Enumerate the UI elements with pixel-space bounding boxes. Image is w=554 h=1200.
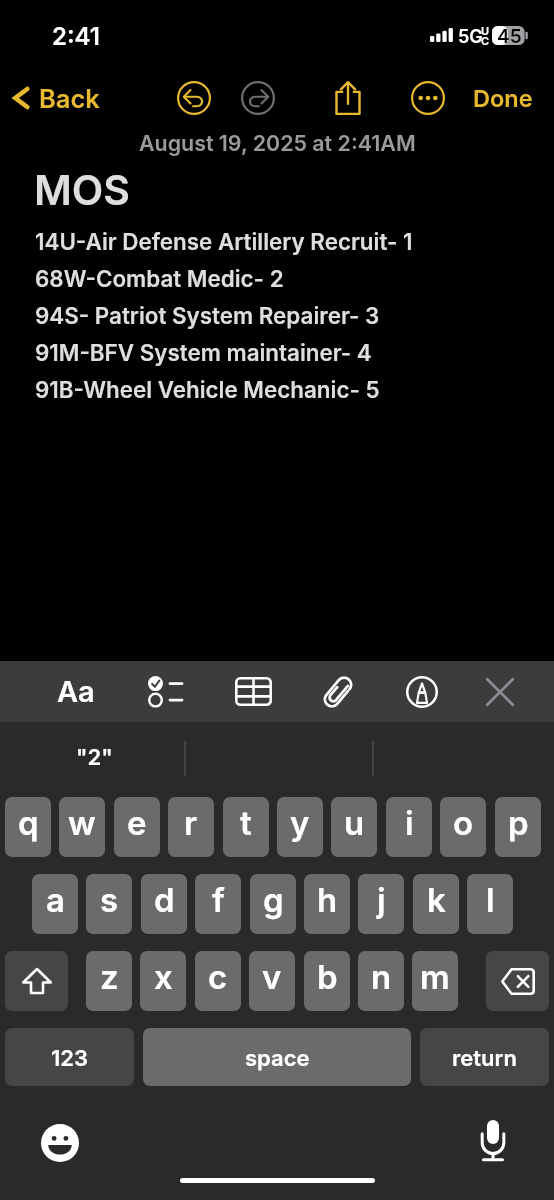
staticText: 45 [497,25,522,44]
button[interactable]: 123 [5,1028,134,1086]
staticText: i [405,803,414,843]
button[interactable]: More options [402,72,454,124]
button[interactable]: v [249,951,295,1011]
staticText: w [68,803,96,843]
staticText: space [245,1045,310,1072]
staticText: h [317,880,338,920]
button[interactable]: w [59,797,105,857]
button[interactable]: Back [6,72,110,124]
button[interactable]: o [440,797,486,857]
staticText: Done [473,84,533,112]
button[interactable]: Done [461,72,545,124]
button[interactable]: Attach file [308,661,368,722]
staticText: 68W-Combat Medic- 2 [35,265,284,292]
staticText: August 19, 2025 at 2:41AM [139,130,416,156]
button[interactable]: b [304,951,350,1011]
button[interactable]: t [223,797,269,857]
staticText: t [240,803,252,843]
button[interactable]: Close keyboard [470,661,530,722]
button[interactable]: y [277,797,323,857]
button[interactable]: i [386,797,432,857]
staticText: f [212,880,225,920]
staticText: r [184,803,198,843]
button[interactable]: g [250,874,296,934]
staticText: c [208,957,228,997]
staticText: j [377,880,386,920]
button[interactable]: Table [223,661,283,722]
staticText: d [154,880,175,920]
button[interactable]: d [141,874,187,934]
staticText: Back [39,83,100,114]
staticText: 2:41 [52,22,100,51]
staticText: x [154,957,173,997]
staticText: MOS [34,165,130,215]
button[interactable]: Markup [392,661,452,722]
button[interactable]: space [143,1028,411,1086]
button[interactable]: Redo [232,72,284,124]
staticText: 14U-Air Defense Artillery Recruit- 1 [35,228,413,255]
button[interactable]: Dictation [471,1119,515,1163]
button[interactable]: r [168,797,214,857]
button[interactable]: l [467,874,513,934]
staticText: U [481,24,490,37]
button[interactable]: m [412,951,458,1011]
staticText: q [18,803,39,843]
staticText: C [481,34,490,47]
staticText: 5G [458,26,483,48]
staticText: g [263,880,284,920]
staticText: 91B-Wheel Vehicle Mechanic- 5 [35,376,380,403]
button[interactable]: a [32,874,78,934]
button[interactable]: x [140,951,186,1011]
staticText: p [508,803,529,843]
staticText: l [486,880,495,920]
staticText: u [344,803,365,843]
staticText: s [100,880,119,920]
staticText: o [453,803,474,843]
button[interactable]: z [86,951,132,1011]
button[interactable]: j [358,874,404,934]
button[interactable]: s [86,874,132,934]
staticText: y [290,803,310,843]
button[interactable]: Aa [46,661,106,722]
staticText: a [46,880,65,920]
button[interactable]: u [331,797,377,857]
button[interactable]: k [413,874,459,934]
staticText: m [420,957,450,997]
staticText: k [427,880,446,920]
staticText: return [452,1045,517,1072]
staticText: 94S- Patriot System Repairer- 3 [35,302,380,329]
staticText: 91M-BFV System maintainer- 4 [35,339,372,366]
button[interactable]: h [304,874,350,934]
button[interactable]: Undo [168,72,220,124]
staticText: 123 [51,1045,89,1072]
staticText: z [100,957,119,997]
staticText: "2" [76,744,113,771]
button[interactable]: q [5,797,51,857]
button[interactable]: Checklist [134,661,194,722]
button[interactable]: Emoji [38,1121,82,1165]
button[interactable]: Backspace [486,951,549,1011]
button[interactable]: f [195,874,241,934]
staticText: n [371,957,392,997]
button[interactable]: e [114,797,160,857]
button[interactable]: return [420,1028,549,1086]
staticText: v [262,957,282,997]
button[interactable]: Share [322,72,374,124]
button[interactable]: p [495,797,541,857]
staticText: Aa [57,674,95,709]
staticText: e [127,803,147,843]
button[interactable]: c [195,951,241,1011]
button[interactable]: n [358,951,404,1011]
staticText: b [317,957,338,997]
button[interactable]: Shift [5,951,68,1011]
